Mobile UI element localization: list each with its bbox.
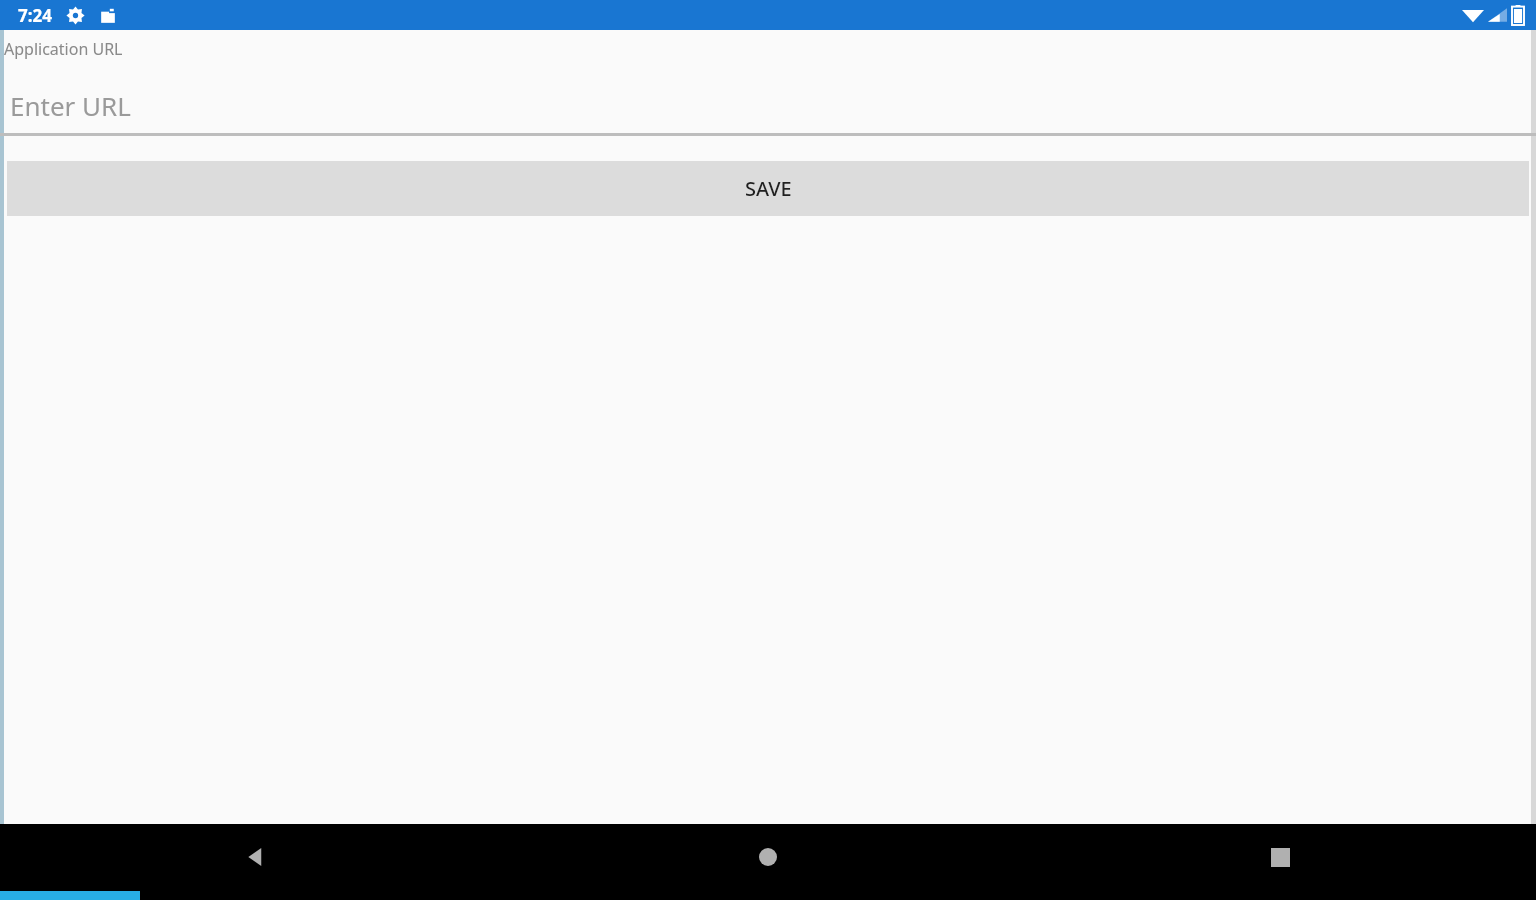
staticText: SAVE <box>745 175 792 202</box>
staticText: Enter URL <box>10 88 131 123</box>
staticText: Application URL <box>4 38 123 60</box>
button[interactable]: SAVE <box>7 161 1529 216</box>
staticText: 7:24 <box>18 4 52 27</box>
button[interactable]: Home <box>512 824 1024 890</box>
button[interactable]: Enter URL <box>0 80 1536 136</box>
button[interactable]: Recent apps <box>1024 824 1536 890</box>
button[interactable]: Back <box>0 824 512 890</box>
